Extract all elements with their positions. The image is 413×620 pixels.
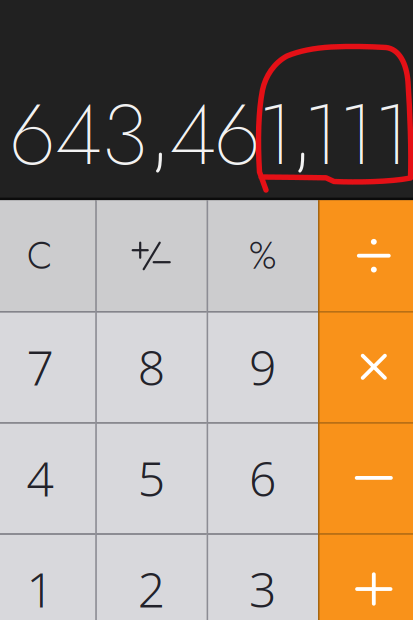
button[interactable]: Clear (0, 200, 95, 311)
staticText: 1 (303, 74, 338, 195)
staticText: 9 (249, 335, 276, 399)
button[interactable]: Plus (318, 533, 413, 620)
staticText: 4 (55, 74, 102, 195)
button[interactable]: 6 (207, 422, 318, 533)
staticText: % (249, 229, 276, 283)
staticText: 1 (374, 74, 409, 195)
staticText: 1 (26, 557, 53, 620)
button[interactable]: Percent (207, 200, 318, 311)
button[interactable]: Minus (318, 422, 413, 533)
staticText: 1 (338, 74, 373, 195)
button[interactable]: Divide (318, 200, 413, 311)
button[interactable]: 4 (0, 422, 95, 533)
staticText: 2 (138, 557, 165, 620)
staticText: 7 (26, 335, 53, 399)
staticText: 1 (257, 74, 292, 195)
staticText: 6 (214, 74, 260, 195)
staticText: 6 (249, 446, 276, 510)
staticText: 8 (138, 335, 165, 399)
button[interactable]: 3 (207, 533, 318, 620)
staticText: 6 (9, 74, 55, 195)
button[interactable]: Multiply (318, 311, 413, 422)
staticText: 3 (102, 74, 148, 195)
staticText: 3 (249, 557, 276, 620)
staticText: 4 (26, 446, 53, 510)
button[interactable]: Plus minus (95, 200, 207, 311)
button[interactable]: 1 (0, 533, 95, 620)
button[interactable]: 7 (0, 311, 95, 422)
button[interactable]: 5 (95, 422, 207, 533)
button[interactable]: 2 (95, 533, 207, 620)
button[interactable]: 9 (207, 311, 318, 422)
button[interactable]: 8 (95, 311, 207, 422)
staticText: 4 (169, 74, 216, 195)
staticText: C (27, 229, 53, 283)
staticText: 5 (138, 446, 165, 510)
